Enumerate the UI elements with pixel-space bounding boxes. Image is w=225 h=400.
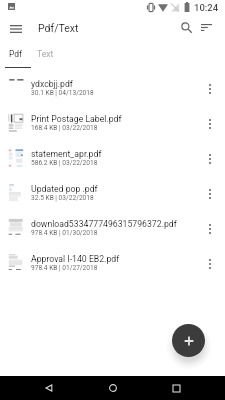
- staticText: Pdf: [9, 49, 23, 59]
- staticText: 32.5 KB | 03/22/2018: [31, 194, 201, 202]
- button[interactable]: Pdf: [2, 43, 30, 65]
- button[interactable]: ydxcbjj.pdf: [0, 70, 225, 105]
- staticText: Text: [37, 49, 54, 59]
- button[interactable]: Add: [172, 324, 205, 357]
- button[interactable]: Menu: [4, 17, 28, 41]
- button[interactable]: More options: [199, 178, 220, 210]
- staticText: 978.4 KB | 01/30/2018: [31, 229, 201, 237]
- button[interactable]: Search: [176, 17, 196, 37]
- staticText: 978.4 KB | 01/27/2018: [31, 264, 201, 272]
- staticText: Pdf/Text: [38, 22, 79, 34]
- staticText: Print Postage Label.pdf: [31, 114, 201, 124]
- button[interactable]: Text: [30, 43, 60, 65]
- button[interactable]: Print Postage Label.pdf: [0, 105, 225, 140]
- staticText: statement_apr.pdf: [31, 149, 201, 159]
- button[interactable]: Recents: [161, 376, 191, 400]
- staticText: Updated pop .pdf: [31, 184, 201, 194]
- staticText: 30.1 KB | 04/13/2018: [31, 89, 201, 97]
- button[interactable]: More options: [199, 213, 220, 245]
- button[interactable]: Sort: [196, 17, 216, 37]
- staticText: download5334777496315796372.pdf: [31, 219, 201, 229]
- staticText: 586.2 KB | 03/22/2018: [31, 159, 201, 167]
- button[interactable]: Home: [98, 376, 128, 400]
- button[interactable]: statement_apr.pdf: [0, 140, 225, 175]
- button[interactable]: download5334777496315796372.pdf: [0, 210, 225, 245]
- button[interactable]: Back: [34, 376, 64, 400]
- button[interactable]: More options: [199, 143, 220, 175]
- button[interactable]: Updated pop .pdf: [0, 175, 225, 210]
- button[interactable]: Approval I-140 EB2.pdf: [0, 245, 225, 280]
- staticText: Approval I-140 EB2.pdf: [31, 254, 201, 264]
- staticText: ydxcbjj.pdf: [31, 79, 201, 89]
- button[interactable]: More options: [199, 73, 220, 105]
- staticText: 10:24: [194, 2, 219, 13]
- button[interactable]: More options: [199, 248, 220, 280]
- button[interactable]: More options: [199, 108, 220, 140]
- staticText: 168.4 KB | 03/22/2018: [31, 124, 201, 132]
